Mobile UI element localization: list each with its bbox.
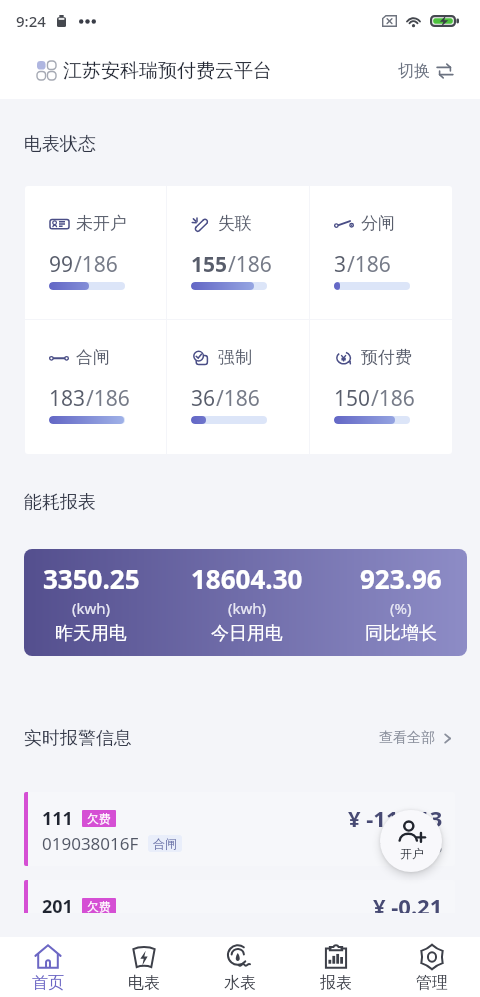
- button[interactable]: 未开户: [25, 186, 166, 319]
- staticText: /186: [347, 250, 391, 279]
- staticText: 强制: [218, 347, 252, 368]
- staticText: /186: [216, 384, 260, 413]
- staticText: 预付费: [361, 347, 412, 368]
- button[interactable]: 201: [24, 880, 455, 913]
- staticText: 155: [191, 250, 228, 279]
- staticText: 36: [191, 384, 216, 413]
- staticText: 电表: [128, 973, 160, 993]
- staticText: 分闸: [361, 213, 395, 234]
- staticText: 今日用电: [211, 622, 283, 645]
- staticText: ¥ -0.21: [373, 891, 443, 913]
- button[interactable]: 开户: [380, 810, 442, 872]
- button[interactable]: 电表: [96, 937, 192, 997]
- staticText: 江苏安科瑞预付费云平台: [63, 59, 272, 83]
- staticText: 电表状态: [24, 133, 96, 156]
- staticText: 首页: [32, 973, 64, 993]
- button[interactable]: 查看全部: [376, 726, 457, 750]
- staticText: (kwh): [228, 598, 267, 618]
- staticText: /186: [371, 384, 415, 413]
- button[interactable]: 111: [24, 792, 455, 866]
- button[interactable]: 分闸: [310, 186, 452, 319]
- staticText: 能耗报表: [24, 491, 96, 514]
- staticText: 欠费: [87, 899, 111, 913]
- staticText: 切换: [398, 61, 430, 81]
- staticText: 150: [334, 384, 371, 413]
- button[interactable]: 切换: [394, 57, 458, 85]
- button[interactable]: 水表: [192, 937, 288, 997]
- staticText: 3350.25: [43, 561, 140, 596]
- button[interactable]: 报表: [288, 937, 384, 997]
- staticText: /186: [228, 250, 272, 279]
- staticText: 10:16:43: [379, 836, 443, 858]
- staticText: 未开户: [76, 213, 127, 234]
- staticText: 111: [42, 806, 73, 831]
- staticText: 管理: [416, 973, 448, 993]
- staticText: 查看全部: [379, 729, 435, 747]
- staticText: (kwh): [72, 598, 111, 618]
- button[interactable]: 首页: [0, 937, 96, 997]
- staticText: 合闸: [153, 836, 177, 851]
- staticText: 99: [49, 250, 74, 279]
- staticText: 开户: [400, 846, 424, 861]
- staticText: 报表: [320, 973, 352, 993]
- staticText: 欠费: [87, 811, 111, 826]
- staticText: 失联: [218, 213, 252, 234]
- staticText: 18604.30: [191, 561, 303, 596]
- button[interactable]: 强制: [167, 320, 309, 454]
- button[interactable]: 预付费: [310, 320, 452, 454]
- button[interactable]: 合闸: [25, 320, 166, 454]
- staticText: 昨天用电: [55, 622, 127, 645]
- button[interactable]: 3350.25: [24, 549, 467, 656]
- staticText: 201: [42, 894, 73, 913]
- staticText: ¥ -116.13: [348, 803, 443, 833]
- staticText: 3: [334, 250, 347, 279]
- staticText: (%): [390, 598, 412, 618]
- staticText: /186: [86, 384, 130, 413]
- staticText: 实时报警信息: [24, 727, 132, 750]
- staticText: 923.96: [360, 561, 442, 596]
- staticText: 183: [49, 384, 86, 413]
- staticText: 019038016F: [42, 832, 139, 855]
- staticText: 水表: [224, 973, 256, 993]
- button[interactable]: 失联: [167, 186, 309, 319]
- button[interactable]: 管理: [384, 937, 480, 997]
- staticText: /186: [74, 250, 118, 279]
- staticText: 同比增长: [365, 622, 437, 645]
- staticText: 9:24: [16, 11, 46, 31]
- staticText: 合闸: [76, 347, 110, 368]
